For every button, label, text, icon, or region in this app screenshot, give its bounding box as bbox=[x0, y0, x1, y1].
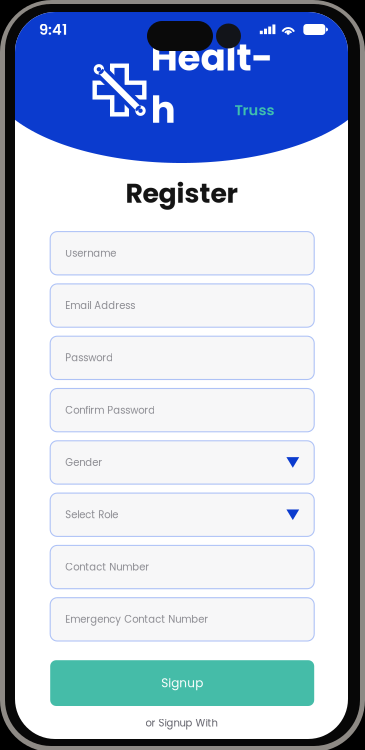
staticText: Gender bbox=[65, 455, 102, 469]
staticText: 9:41 bbox=[39, 19, 67, 40]
staticText: Username bbox=[65, 246, 116, 260]
button[interactable]: Signup bbox=[50, 660, 314, 706]
button[interactable]: Contact Number bbox=[50, 545, 314, 589]
staticText: Email Address bbox=[65, 298, 135, 312]
button[interactable]: Emergency Contact Number bbox=[50, 598, 314, 641]
staticText: Register bbox=[125, 175, 237, 212]
button[interactable]: Gender bbox=[50, 441, 314, 484]
staticText: Emergency Contact Number bbox=[65, 612, 208, 626]
staticText: Select Role bbox=[65, 508, 118, 522]
staticText: Health bbox=[150, 31, 273, 136]
staticText: Confirm Password bbox=[65, 403, 155, 417]
button[interactable]: Email Address bbox=[50, 284, 314, 327]
button[interactable]: Select Role bbox=[50, 493, 314, 536]
staticText: Password bbox=[65, 351, 113, 365]
staticText: Contact Number bbox=[65, 560, 149, 574]
button[interactable]: Confirm Password bbox=[50, 388, 314, 432]
button[interactable]: Username bbox=[50, 232, 314, 275]
staticText: Truss bbox=[234, 100, 274, 120]
button[interactable]: Password bbox=[50, 336, 314, 379]
staticText: or Signup With bbox=[145, 716, 217, 730]
staticText: Signup bbox=[161, 675, 203, 691]
